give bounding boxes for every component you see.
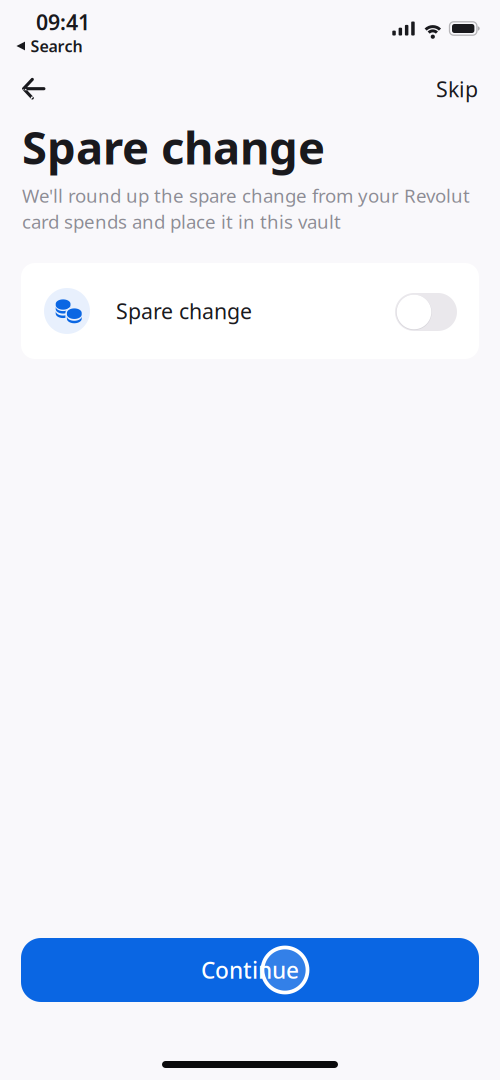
staticText: Spare change — [22, 117, 325, 177]
button[interactable]: Spare change — [21, 263, 479, 359]
button[interactable]: Skip — [418, 63, 500, 115]
button[interactable]: Continue — [21, 938, 479, 1002]
staticText: Skip — [436, 75, 478, 103]
staticText: Search — [30, 35, 82, 57]
button[interactable]: Back — [0, 66, 64, 111]
staticText: 09:41 — [36, 8, 90, 36]
staticText: Continue — [201, 955, 299, 985]
staticText: We'll round up the spare change from you… — [22, 183, 470, 234]
staticText: Spare change — [116, 297, 252, 325]
button[interactable]: Search — [0, 36, 90, 56]
